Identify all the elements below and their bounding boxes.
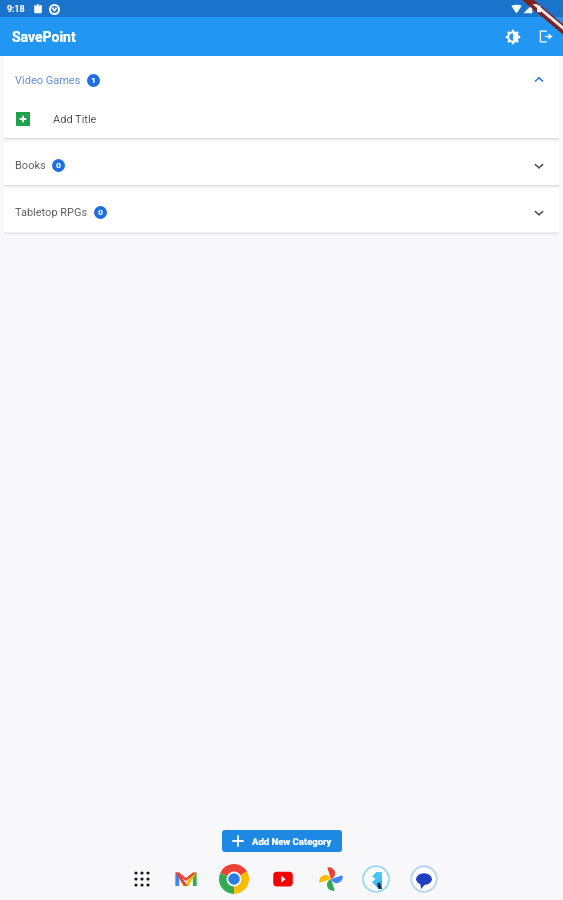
staticText: 9:18	[7, 4, 25, 15]
button[interactable]: Add Title	[4, 104, 559, 134]
button[interactable]: Add New Category	[222, 830, 342, 852]
button[interactable]: Gmail	[171, 864, 201, 894]
button[interactable]: Apps	[127, 864, 157, 894]
button[interactable]: YouTube	[268, 864, 298, 894]
button[interactable]: Chrome	[219, 864, 249, 894]
staticText: 0	[98, 208, 103, 217]
button[interactable]: Video Games	[4, 56, 559, 104]
button[interactable]: Flutter	[361, 864, 391, 894]
button[interactable]: Messages	[409, 864, 439, 894]
staticText: Video Games	[15, 74, 81, 87]
button[interactable]: Log out	[529, 20, 562, 53]
staticText: 1	[91, 76, 96, 85]
button[interactable]: Tabletop RPGs	[4, 188, 559, 233]
staticText: SavePoint	[12, 29, 76, 45]
staticText: Books	[15, 159, 46, 172]
staticText: Add Title	[53, 113, 97, 126]
button[interactable]: Google Photos	[316, 864, 346, 894]
button[interactable]: Toggle dark theme	[496, 20, 529, 53]
button[interactable]: Books	[4, 142, 559, 185]
staticText: 0	[56, 161, 61, 170]
staticText: Add New Category	[252, 836, 332, 847]
staticText: Tabletop RPGs	[15, 206, 88, 219]
